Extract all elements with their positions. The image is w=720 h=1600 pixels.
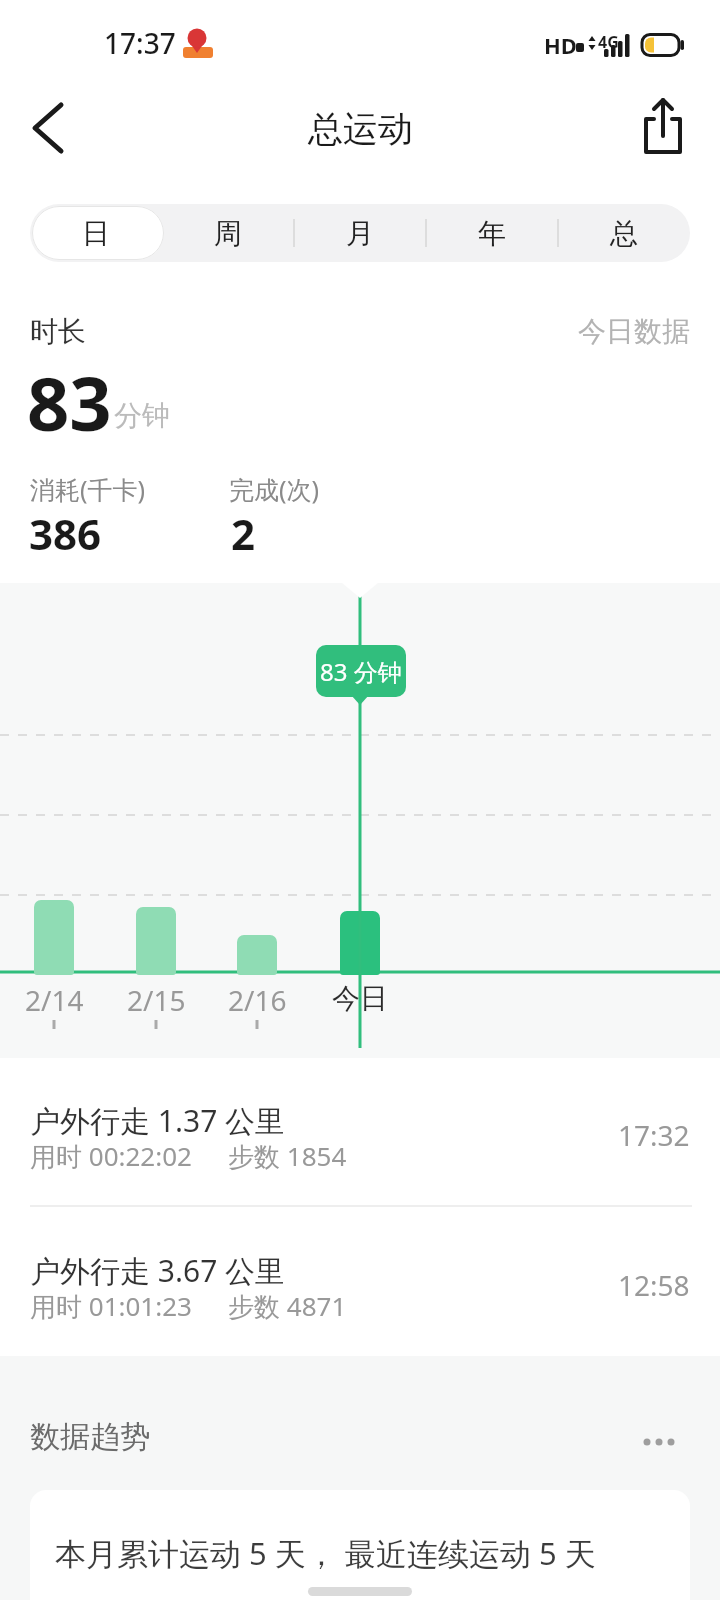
staticText: 户外行走 3.67 公里 xyxy=(30,1250,286,1291)
button[interactable]: 总 xyxy=(558,204,690,262)
staticText: 12:58 xyxy=(618,1266,690,1304)
staticText: 户外行走 1.37 公里 xyxy=(30,1100,286,1141)
staticText: 83 xyxy=(27,352,112,453)
staticText: 17:37 xyxy=(104,24,176,62)
staticText: 周 xyxy=(214,216,242,251)
staticText: 消耗(千卡) xyxy=(30,472,146,506)
staticText: 今日数据 xyxy=(578,314,690,349)
staticText: 本月累计运动 5 天， 最近连续运动 5 天 xyxy=(55,1532,596,1574)
staticText: 步数 4871 xyxy=(228,1288,347,1324)
staticText: 分钟 xyxy=(114,398,170,433)
button[interactable]: 年 xyxy=(426,204,558,262)
button[interactable] xyxy=(634,92,694,160)
staticText: 月 xyxy=(346,216,374,251)
button[interactable] xyxy=(20,98,80,158)
staticText: 数据趋势 xyxy=(30,1418,150,1456)
button[interactable] xyxy=(635,1420,685,1460)
staticText: 2/15 xyxy=(127,981,186,1019)
staticText: 4G xyxy=(598,31,619,53)
staticText: 完成(次) xyxy=(229,472,320,506)
button[interactable]: 本月累计运动 5 天， 最近连续运动 5 天 xyxy=(30,1490,690,1600)
button[interactable]: 周 xyxy=(162,204,294,262)
staticText: 83 分钟 xyxy=(320,655,402,688)
staticText: 总运动 xyxy=(308,107,413,151)
staticText: 日 xyxy=(82,216,110,251)
staticText: 用时 00:22:02 xyxy=(30,1138,192,1174)
staticText: 步数 1854 xyxy=(228,1138,347,1174)
staticText: 386 xyxy=(29,505,102,562)
staticText: 2/14 xyxy=(25,981,84,1019)
staticText: 2 xyxy=(231,505,256,562)
staticText: 总 xyxy=(610,216,638,251)
button[interactable]: 户外行走 1.37 公里 xyxy=(0,1058,720,1206)
staticText: 用时 01:01:23 xyxy=(30,1288,192,1324)
staticText: HD xyxy=(544,30,577,60)
staticText: 2/16 xyxy=(228,981,287,1019)
staticText: 年 xyxy=(478,216,506,251)
staticText: 17:32 xyxy=(618,1116,690,1154)
button[interactable]: 日 xyxy=(30,204,162,262)
staticText: 时长 xyxy=(30,314,86,349)
staticText: 今日 xyxy=(332,981,388,1016)
button[interactable]: 户外行走 3.67 公里 xyxy=(0,1208,720,1356)
button[interactable]: 月 xyxy=(294,204,426,262)
